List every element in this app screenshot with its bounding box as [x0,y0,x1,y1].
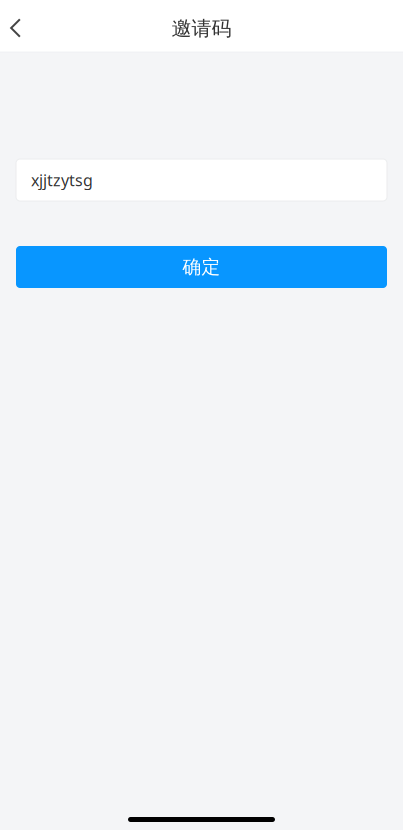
button[interactable]: Back [0,0,31,51]
staticText: 确定 [182,255,220,278]
staticText: xjjtzytsg [31,169,93,191]
staticText: 邀请码 [171,16,231,41]
button[interactable]: 确定 [16,246,387,288]
button[interactable]: xjjtzytsg [16,159,387,201]
